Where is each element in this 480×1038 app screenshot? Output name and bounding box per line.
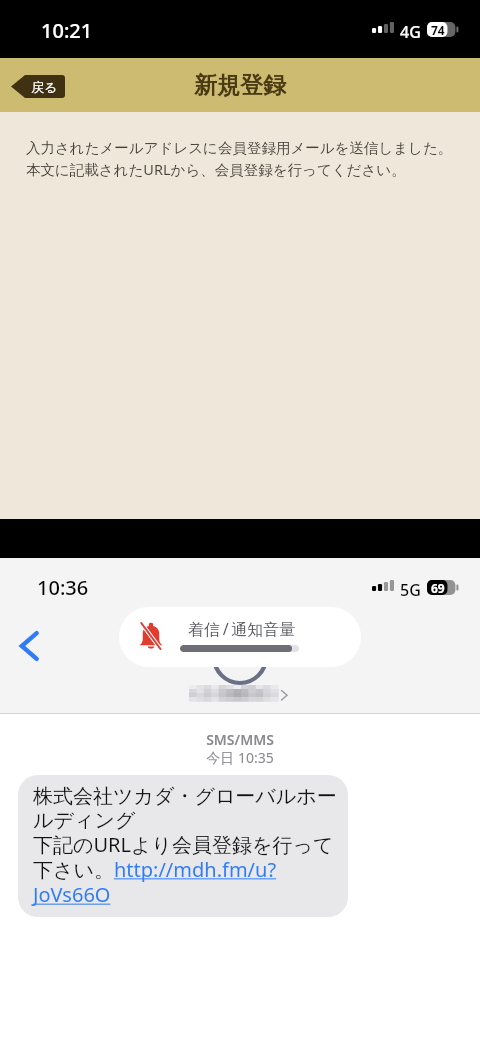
staticText: 今日 10:35 [0,748,480,767]
button[interactable]: 株式会社ツカダ・グローバルホールディング 下記のURLより会員登録を行って下さい… [18,775,348,917]
staticText: SMS/MMS [0,730,480,749]
staticText: 74 [431,22,445,37]
staticText: 5G [400,579,421,601]
staticText: 新規登録 [194,71,286,100]
staticText: 4G [400,21,421,43]
staticText: 株式会社ツカダ・グローバルホールディング 下記のURLより会員登録を行って下さい… [33,784,343,908]
staticText: 10:36 [37,574,89,601]
staticText: 着信 / 通知音量 [188,618,296,640]
staticText: 入力されたメールアドレスに会員登録用メールを送信しました。 [26,139,453,157]
staticText: 戻る [31,79,58,95]
button[interactable]: 戻る [11,75,65,98]
staticText: 69 [431,580,445,595]
staticText: 本文に記載されたURLから、会員登録を行ってください。 [26,159,406,179]
button[interactable]: Back [10,624,48,662]
staticText: 10:21 [41,17,93,44]
